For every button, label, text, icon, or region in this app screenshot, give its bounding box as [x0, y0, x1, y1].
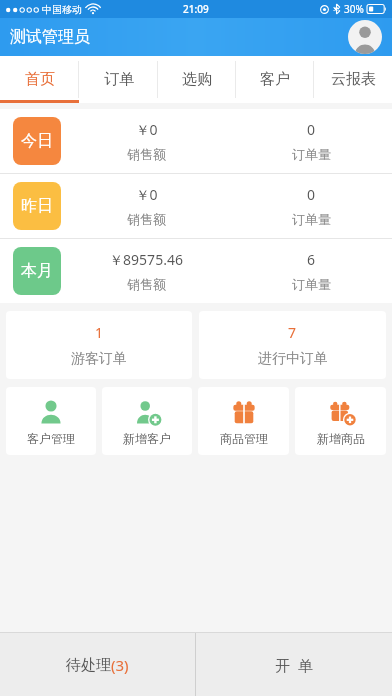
button[interactable]: 订单 — [79, 56, 158, 103]
staticText: 0 — [307, 185, 316, 204]
staticText: 1 — [95, 323, 104, 342]
staticText: 测试管理员 — [10, 27, 90, 47]
staticText: 开 单 — [275, 655, 313, 675]
button[interactable]: 开 单 — [196, 633, 392, 696]
staticText: 进行中订单 — [258, 350, 328, 368]
button[interactable]: 7 — [199, 311, 386, 379]
staticText: 销售额 — [127, 276, 166, 292]
button[interactable]: 本月 — [0, 239, 392, 303]
button[interactable]: Profile — [348, 20, 382, 54]
staticText: 21:09 — [183, 2, 209, 16]
staticText: ￥89575.46 — [109, 250, 183, 269]
staticText: 昨日 — [21, 196, 53, 216]
staticText: 6 — [307, 250, 316, 269]
staticText: 本月 — [21, 261, 53, 281]
staticText: 新增客户 — [123, 431, 171, 446]
staticText: 待处理 — [66, 656, 111, 675]
staticText: 今日 — [21, 131, 53, 151]
staticText: 新增商品 — [317, 431, 365, 446]
staticText: 首页 — [25, 70, 55, 89]
button[interactable]: 云报表 — [314, 56, 392, 103]
button[interactable]: 选购 — [158, 56, 236, 103]
staticText: 订单量 — [292, 276, 331, 292]
staticText: 订单 — [104, 70, 134, 89]
button[interactable]: 客户管理 — [6, 387, 96, 455]
staticText: 云报表 — [331, 70, 376, 89]
staticText: 订单量 — [292, 211, 331, 227]
staticText: 商品管理 — [220, 431, 268, 446]
staticText: (3) — [111, 655, 129, 675]
staticText: 0 — [307, 120, 316, 139]
button[interactable]: 新增商品 — [295, 387, 386, 455]
staticText: 销售额 — [127, 146, 166, 162]
button[interactable]: 客户 — [236, 56, 314, 103]
staticText: ￥0 — [135, 185, 158, 204]
button[interactable]: 昨日 — [0, 174, 392, 238]
button[interactable]: 商品管理 — [198, 387, 289, 455]
button[interactable]: 待处理 — [0, 633, 195, 696]
staticText: 30% — [344, 2, 364, 16]
staticText: 客户 — [260, 70, 290, 89]
button[interactable]: 1 — [6, 311, 192, 379]
staticText: 订单量 — [292, 146, 331, 162]
button[interactable]: 新增客户 — [102, 387, 192, 455]
staticText: 客户管理 — [27, 431, 75, 446]
button[interactable]: 首页 — [0, 56, 79, 103]
staticText: 7 — [288, 323, 297, 342]
staticText: 中国移动 — [42, 3, 82, 16]
staticText: 销售额 — [127, 211, 166, 227]
button[interactable]: 今日 — [0, 109, 392, 173]
staticText: 游客订单 — [71, 350, 127, 368]
staticText: ￥0 — [135, 120, 158, 139]
staticText: 选购 — [182, 70, 212, 89]
